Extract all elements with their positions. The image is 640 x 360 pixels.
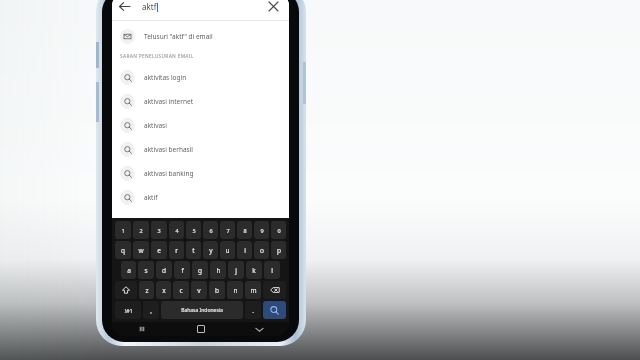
button[interactable]: Backspace	[263, 281, 286, 299]
button[interactable]: Back	[112, 0, 136, 18]
button[interactable]: Clear	[261, 0, 285, 18]
staticText: aktivasi banking	[144, 169, 194, 178]
button[interactable]: b	[209, 281, 225, 299]
staticText: 6	[209, 227, 213, 234]
button[interactable]: aktivasi berhasil	[112, 137, 289, 161]
staticText: h	[216, 266, 221, 275]
button[interactable]: Telusuri "aktf" di email	[112, 25, 289, 47]
button[interactable]: aktivitas login	[112, 65, 289, 89]
staticText: Telusuri "aktf" di email	[144, 32, 213, 41]
staticText: 0	[277, 227, 281, 234]
button[interactable]: f	[174, 261, 190, 279]
button[interactable]: z	[139, 281, 154, 299]
button[interactable]: d	[156, 261, 172, 279]
button[interactable]: 3	[151, 221, 167, 239]
button[interactable]: l	[264, 261, 280, 279]
button[interactable]: c	[173, 281, 189, 299]
button[interactable]: e	[151, 241, 167, 259]
staticText: d	[162, 266, 166, 275]
button[interactable]: v	[191, 281, 207, 299]
staticText: aktif	[144, 193, 158, 202]
button[interactable]: r	[169, 241, 184, 259]
button[interactable]: 2	[133, 221, 149, 239]
button[interactable]: .	[245, 301, 261, 319]
button[interactable]: Search	[263, 301, 286, 319]
staticText: f	[181, 266, 184, 275]
button[interactable]: p	[271, 241, 286, 259]
button[interactable]: aktivasi banking	[112, 161, 289, 185]
button[interactable]: Hide keyboard	[230, 322, 289, 336]
staticText: v	[197, 286, 201, 295]
staticText: aktivasi berhasil	[144, 145, 194, 154]
staticText: q	[121, 246, 125, 255]
staticText: ,	[150, 306, 152, 315]
button[interactable]: t	[186, 241, 201, 259]
staticText: n	[233, 286, 238, 295]
staticText: s	[144, 266, 148, 275]
button[interactable]: Shift	[115, 281, 137, 299]
button[interactable]: Recents	[112, 322, 171, 336]
staticText: .	[252, 306, 254, 315]
staticText: p	[277, 246, 281, 255]
button[interactable]: 1	[115, 221, 131, 239]
button[interactable]: Bahasa Indonesia	[161, 301, 243, 319]
button[interactable]: q	[115, 241, 131, 259]
staticText: 5	[192, 227, 196, 234]
staticText: t	[192, 246, 195, 255]
staticText: 4	[175, 227, 179, 234]
button[interactable]: a	[121, 261, 136, 279]
staticText: w	[138, 246, 144, 255]
staticText: b	[215, 286, 219, 295]
staticText: r	[175, 246, 178, 255]
button[interactable]: ,	[143, 301, 159, 319]
staticText: aktivasi internet	[144, 97, 193, 106]
button[interactable]: 4	[169, 221, 184, 239]
button[interactable]: i	[237, 241, 252, 259]
staticText: o	[260, 246, 264, 255]
button[interactable]: s	[138, 261, 154, 279]
staticText: !#1	[124, 307, 133, 314]
staticText: SARAN PENELUSURAN EMAIL	[120, 53, 194, 60]
staticText: 1	[121, 227, 125, 234]
staticText: 8	[243, 227, 247, 234]
staticText: l	[271, 266, 273, 275]
staticText: aktivitas login	[144, 73, 187, 82]
staticText: e	[157, 246, 161, 255]
staticText: y	[209, 246, 213, 255]
button[interactable]: m	[245, 281, 261, 299]
button[interactable]: w	[133, 241, 149, 259]
button[interactable]: 7	[220, 221, 235, 239]
button[interactable]: 0	[271, 221, 286, 239]
staticText: 3	[157, 227, 161, 234]
staticText: z	[145, 286, 149, 295]
staticText: Bahasa Indonesia	[181, 307, 223, 314]
staticText: j	[235, 266, 237, 275]
staticText: aktivasi	[144, 121, 167, 130]
button[interactable]: aktivasi	[112, 113, 289, 137]
button[interactable]: o	[254, 241, 269, 259]
staticText: a	[127, 266, 131, 275]
button[interactable]: g	[192, 261, 208, 279]
button[interactable]: 9	[254, 221, 269, 239]
button[interactable]: !#1	[115, 301, 141, 319]
staticText: 7	[226, 227, 230, 234]
staticText: k	[252, 266, 256, 275]
staticText: x	[162, 286, 166, 295]
button[interactable]: h	[210, 261, 226, 279]
button[interactable]: u	[220, 241, 235, 259]
button[interactable]: y	[203, 241, 218, 259]
button[interactable]: aktif	[112, 185, 289, 209]
button[interactable]: 6	[203, 221, 218, 239]
staticText: i	[244, 246, 246, 255]
button[interactable]: Home	[171, 322, 230, 336]
button[interactable]: k	[246, 261, 262, 279]
button[interactable]: n	[227, 281, 243, 299]
button[interactable]: aktivasi internet	[112, 89, 289, 113]
button[interactable]: j	[228, 261, 244, 279]
staticText: 9	[260, 227, 264, 234]
button[interactable]: 8	[237, 221, 252, 239]
button[interactable]: 5	[186, 221, 201, 239]
staticText: m	[250, 286, 257, 295]
staticText: aktf	[142, 1, 157, 12]
button[interactable]: x	[156, 281, 171, 299]
